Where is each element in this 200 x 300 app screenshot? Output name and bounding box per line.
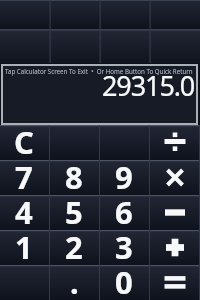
staticText: 1	[15, 226, 33, 261]
button[interactable]: 4	[0, 195, 50, 230]
button[interactable]: Add	[150, 230, 200, 265]
button[interactable]: Blank key	[100, 125, 150, 160]
button[interactable]: 3	[100, 230, 150, 265]
button[interactable]: Equals	[150, 265, 200, 300]
button[interactable]: 7	[0, 160, 50, 195]
staticText: 8	[65, 156, 83, 191]
staticText: 9	[115, 156, 133, 191]
staticText: 4	[15, 191, 33, 226]
staticText: 7	[15, 156, 33, 191]
button[interactable]: Blank key	[0, 265, 50, 300]
staticText: 6	[115, 191, 133, 226]
button[interactable]: 6	[100, 195, 150, 230]
staticText: 0	[115, 261, 133, 296]
staticText: 2	[65, 226, 83, 261]
button[interactable]: 8	[50, 160, 100, 195]
button[interactable]: 9	[100, 160, 150, 195]
button[interactable]: Multiply	[150, 160, 200, 195]
staticText: 5	[65, 191, 83, 226]
staticText: 29315.0	[102, 67, 195, 104]
button[interactable]: 1	[0, 230, 50, 265]
button[interactable]: 0	[100, 265, 150, 300]
button[interactable]: 5	[50, 195, 100, 230]
button[interactable]: 2	[50, 230, 100, 265]
button[interactable]: Subtract	[150, 195, 200, 230]
staticText: 3	[115, 226, 133, 261]
button[interactable]: Clear	[0, 125, 50, 160]
button[interactable]: Divide	[150, 125, 200, 160]
staticText: Tap Calculator Screen To Exit • Or Home …	[5, 67, 193, 75]
staticText: .	[70, 261, 79, 296]
staticText: C	[14, 121, 34, 156]
button[interactable]: Decimal point	[50, 265, 100, 300]
button[interactable]: Blank key	[50, 125, 100, 160]
